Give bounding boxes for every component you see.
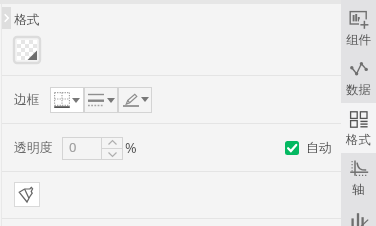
staticText: 透明度 <box>14 140 53 156</box>
button[interactable]: Line colour <box>118 87 152 113</box>
button[interactable]: 轴 <box>341 153 376 203</box>
button[interactable]: 自动 <box>285 139 332 157</box>
staticText: 自动 <box>306 140 332 156</box>
staticText: 数据 <box>346 82 371 98</box>
button[interactable]: Transparency value <box>62 137 123 160</box>
staticText: 轴 <box>352 182 365 198</box>
button[interactable]: 数据 <box>341 53 376 103</box>
button[interactable]: 格式 <box>341 103 376 153</box>
button[interactable]: Border style <box>50 87 84 113</box>
staticText: 0 <box>69 138 77 156</box>
staticText: 边框 <box>14 92 40 108</box>
button[interactable]: Fill <box>14 182 40 207</box>
staticText: 组件 <box>346 32 371 48</box>
staticText: % <box>125 138 137 157</box>
staticText: 格式 <box>346 132 371 148</box>
button[interactable]: Collapse panel <box>2 7 11 29</box>
button[interactable]: Fill colour swatch <box>14 37 40 63</box>
staticText: 格式 <box>14 12 40 28</box>
button[interactable]: Line weight <box>84 87 118 113</box>
button[interactable]: Series <box>341 203 376 226</box>
button[interactable]: 组件 <box>341 3 376 53</box>
